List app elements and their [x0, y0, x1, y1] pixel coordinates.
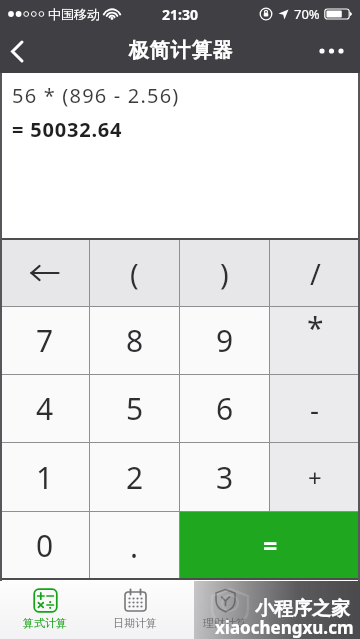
- staticText: xiaochengxu.cm: [215, 616, 354, 639]
- staticText: +: [308, 461, 322, 494]
- staticText: 小程序之家: [255, 597, 350, 621]
- button[interactable]: 9: [180, 307, 269, 374]
- button[interactable]: 理财计算: [180, 581, 270, 639]
- button[interactable]: +: [270, 443, 360, 511]
- button[interactable]: 1: [0, 443, 89, 511]
- button[interactable]: 2: [90, 443, 179, 511]
- button[interactable]: 4: [0, 375, 89, 442]
- staticText: /: [310, 254, 321, 293]
- staticText: 极简计算器: [128, 38, 233, 63]
- staticText: = 50032.64: [12, 116, 123, 143]
- staticText: 2: [126, 457, 144, 498]
- staticText: 8: [126, 320, 144, 361]
- button[interactable]: 7: [0, 307, 89, 374]
- staticText: 56 * (896 - 2.56): [12, 82, 180, 109]
- staticText: 7: [36, 320, 54, 361]
- staticText: .: [130, 526, 139, 567]
- staticText: 70%: [294, 5, 320, 23]
- staticText: 6: [216, 388, 234, 429]
- staticText: ): [220, 254, 229, 293]
- button[interactable]: 5: [90, 375, 179, 442]
- staticText: -: [310, 390, 320, 428]
- staticText: 日期计算: [113, 616, 157, 630]
- staticText: 3: [216, 457, 234, 498]
- staticText: =: [263, 528, 278, 562]
- button[interactable]: 日期计算: [90, 581, 180, 639]
- staticText: 中国移动: [48, 6, 100, 22]
- button[interactable]: -: [270, 375, 360, 442]
- button[interactable]: .: [90, 512, 179, 578]
- staticText: 1: [36, 457, 54, 498]
- button[interactable]: [314, 36, 350, 66]
- button[interactable]: ): [180, 240, 269, 306]
- staticText: 4: [36, 388, 54, 429]
- button[interactable]: (: [90, 240, 179, 306]
- staticText: *: [307, 307, 324, 348]
- button[interactable]: 8: [90, 307, 179, 374]
- button[interactable]: 6: [180, 375, 269, 442]
- staticText: (: [130, 254, 139, 293]
- staticText: 21:30: [162, 5, 198, 24]
- staticText: 0: [36, 525, 54, 566]
- staticText: 5: [126, 388, 144, 429]
- staticText: 9: [216, 320, 234, 361]
- button[interactable]: [2, 36, 32, 66]
- button[interactable]: 算式计算: [0, 581, 90, 639]
- staticText: 理财计算: [203, 616, 247, 630]
- button[interactable]: [0, 240, 89, 306]
- button[interactable]: *: [270, 307, 360, 374]
- button[interactable]: 3: [180, 443, 269, 511]
- button[interactable]: =: [180, 512, 360, 578]
- button[interactable]: /: [270, 240, 360, 306]
- staticText: 算式计算: [23, 616, 67, 630]
- button[interactable]: 0: [0, 512, 89, 578]
